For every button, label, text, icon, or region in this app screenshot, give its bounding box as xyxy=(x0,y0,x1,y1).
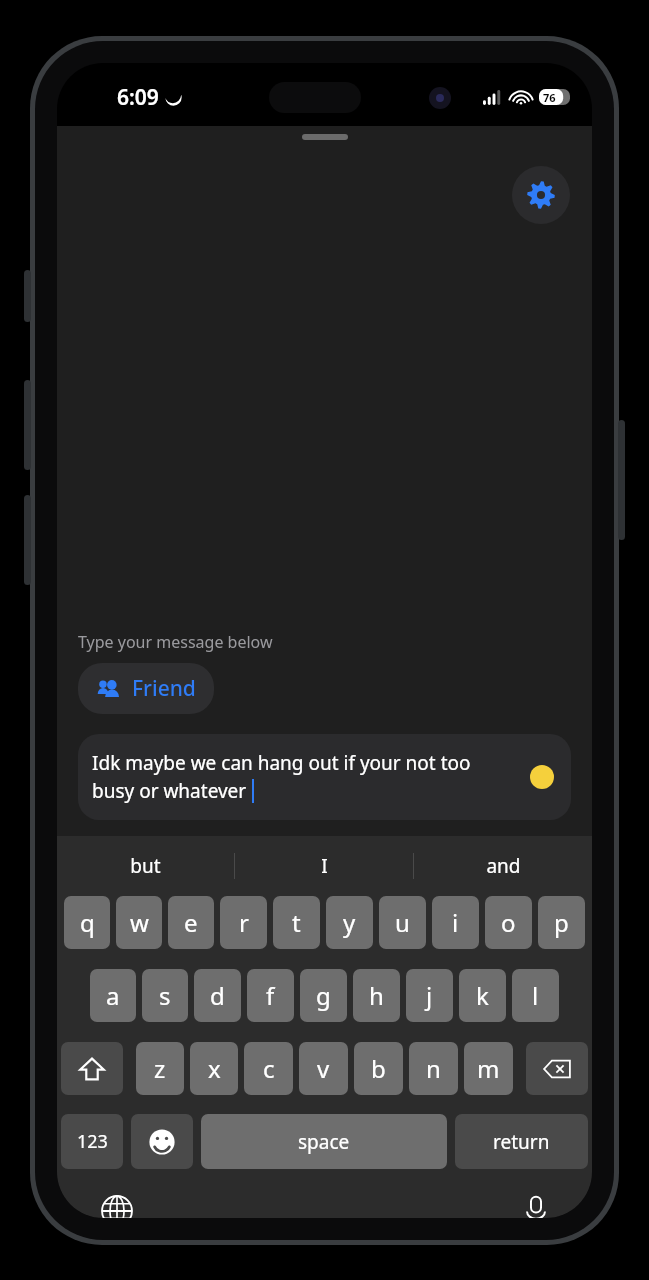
button[interactable]: Idk maybe we can hang out if your not to… xyxy=(78,734,571,820)
staticText: z xyxy=(154,1052,166,1085)
staticText: o xyxy=(501,906,516,939)
button[interactable]: b xyxy=(354,1042,403,1095)
button[interactable]: I xyxy=(235,836,413,896)
staticText: 6:09 xyxy=(117,83,159,112)
staticText: i xyxy=(452,906,459,939)
button[interactable]: q xyxy=(64,896,110,949)
button[interactable]: but xyxy=(57,836,234,896)
button[interactable]: a xyxy=(90,969,136,1022)
button[interactable]: k xyxy=(459,969,506,1022)
button[interactable]: Change keyboard xyxy=(97,1191,137,1218)
staticText: p xyxy=(554,906,569,939)
button[interactable]: p xyxy=(538,896,585,949)
button[interactable]: Settings xyxy=(512,166,570,224)
staticText: a xyxy=(106,979,120,1012)
staticText: j xyxy=(426,979,433,1012)
staticText: c xyxy=(263,1052,275,1085)
button[interactable]: Emoji xyxy=(131,1114,193,1169)
staticText: k xyxy=(476,979,489,1012)
button[interactable]: g xyxy=(300,969,347,1022)
button[interactable]: s xyxy=(142,969,188,1022)
staticText: 123 xyxy=(77,1129,108,1154)
button[interactable]: c xyxy=(244,1042,293,1095)
staticText: n xyxy=(426,1052,441,1085)
button[interactable]: Friend xyxy=(78,663,214,714)
button[interactable]: i xyxy=(432,896,479,949)
button[interactable]: n xyxy=(409,1042,458,1095)
staticText: t xyxy=(292,906,301,939)
staticText: r xyxy=(239,906,249,939)
staticText: 76 xyxy=(543,90,556,105)
staticText: l xyxy=(532,979,539,1012)
staticText: y xyxy=(343,906,356,939)
button[interactable]: d xyxy=(194,969,241,1022)
staticText: w xyxy=(130,906,149,939)
staticText: s xyxy=(159,979,171,1012)
staticText: x xyxy=(208,1052,221,1085)
button[interactable]: Shift xyxy=(61,1042,123,1095)
staticText: b xyxy=(371,1052,386,1085)
staticText: busy or whatever xyxy=(92,778,247,804)
button[interactable]: m xyxy=(464,1042,513,1095)
button[interactable]: 123 xyxy=(61,1114,123,1169)
staticText: I xyxy=(321,853,328,879)
staticText: Type your message below xyxy=(78,631,273,653)
button[interactable]: v xyxy=(299,1042,348,1095)
button[interactable]: u xyxy=(379,896,426,949)
button[interactable]: and xyxy=(414,836,592,896)
button[interactable]: l xyxy=(512,969,559,1022)
staticText: u xyxy=(395,906,410,939)
button[interactable]: Backspace xyxy=(526,1042,588,1095)
staticText: v xyxy=(317,1052,330,1085)
button[interactable]: y xyxy=(326,896,373,949)
button[interactable]: o xyxy=(485,896,532,949)
button[interactable]: t xyxy=(273,896,320,949)
staticText: Friend xyxy=(132,674,196,703)
button[interactable]: z xyxy=(136,1042,184,1095)
button[interactable]: x xyxy=(190,1042,238,1095)
staticText: Idk maybe we can hang out if your not to… xyxy=(92,750,471,776)
button[interactable]: e xyxy=(168,896,214,949)
staticText: e xyxy=(184,906,198,939)
staticText: space xyxy=(298,1129,350,1155)
staticText: and xyxy=(486,853,521,879)
button[interactable]: f xyxy=(247,969,294,1022)
button[interactable]: j xyxy=(406,969,453,1022)
staticText: m xyxy=(477,1052,500,1085)
button[interactable]: space xyxy=(201,1114,447,1169)
button[interactable]: Dictate xyxy=(516,1189,556,1218)
button[interactable]: h xyxy=(353,969,400,1022)
staticText: g xyxy=(316,979,331,1012)
button[interactable]: return xyxy=(455,1114,588,1169)
staticText: f xyxy=(266,979,275,1012)
staticText: h xyxy=(369,979,384,1012)
button[interactable]: w xyxy=(116,896,162,949)
staticText: return xyxy=(493,1129,550,1155)
button[interactable]: r xyxy=(220,896,267,949)
staticText: q xyxy=(80,906,95,939)
staticText: but xyxy=(130,853,161,879)
staticText: d xyxy=(210,979,225,1012)
